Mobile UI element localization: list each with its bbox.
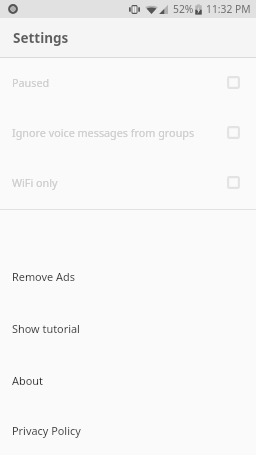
button[interactable]: Ignore voice messages from groups [0,107,256,157]
staticText: Ignore voice messages from groups [12,125,227,140]
other: Notification [8,4,18,14]
staticText: About [12,373,43,388]
button[interactable]: WiFi only [0,157,256,207]
staticText: Paused [12,75,227,90]
staticText: Settings [13,29,69,47]
staticText: WiFi only [12,175,227,190]
button[interactable]: Show tutorial [0,302,256,354]
staticText: 52% [173,2,194,16]
staticText: Show tutorial [12,321,80,336]
button[interactable]: About [0,354,256,406]
button[interactable]: Privacy Policy [0,406,256,454]
staticText: Privacy Policy [12,423,81,438]
staticText: 11:32 PM [206,2,251,16]
staticText: Remove Ads [12,269,75,284]
button[interactable]: Paused [0,57,256,107]
button[interactable]: Remove Ads [0,250,256,302]
